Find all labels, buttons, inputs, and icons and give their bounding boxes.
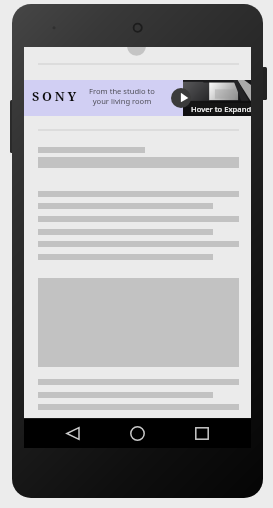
button[interactable]: Recent apps bbox=[181, 420, 222, 446]
button[interactable]: Home bbox=[117, 420, 158, 446]
staticText: From the studio to your living room bbox=[89, 86, 155, 107]
button[interactable]: Back bbox=[52, 420, 93, 446]
staticText: Hover to Expand bbox=[191, 104, 251, 114]
staticText: SONY bbox=[32, 88, 80, 105]
button[interactable]: SONY bbox=[24, 80, 251, 116]
button[interactable]: Play video bbox=[171, 88, 191, 108]
button[interactable]: Hover to Expand bbox=[183, 80, 251, 116]
